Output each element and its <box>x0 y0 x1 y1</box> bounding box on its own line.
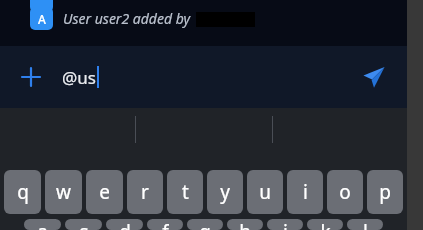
staticText: t <box>182 179 189 205</box>
button[interactable]: h <box>227 219 263 230</box>
staticText: @us <box>62 66 96 89</box>
staticText: p <box>379 179 391 205</box>
button[interactable]: Send <box>355 58 393 96</box>
button[interactable]: u <box>247 170 283 214</box>
button[interactable]: y <box>207 170 243 214</box>
button[interactable]: r <box>127 170 163 214</box>
button[interactable]: f <box>147 219 183 230</box>
button[interactable]: g <box>187 219 223 230</box>
button[interactable]: q <box>4 170 41 214</box>
staticText: y <box>220 179 230 205</box>
button[interactable]: w <box>45 170 82 214</box>
button[interactable]: @us <box>62 57 347 97</box>
button[interactable]: a <box>24 219 61 230</box>
button[interactable]: A <box>0 7 407 30</box>
staticText: k <box>320 219 331 230</box>
staticText: A <box>38 11 46 27</box>
button[interactable]: j <box>267 219 303 230</box>
staticText: w <box>56 179 71 205</box>
staticText: a <box>37 219 48 230</box>
staticText: s <box>79 219 89 230</box>
staticText: i <box>303 179 308 205</box>
staticText: o <box>339 179 351 205</box>
button[interactable]: Add attachment <box>14 60 48 94</box>
staticText: r <box>141 179 149 205</box>
staticText: l <box>363 219 368 230</box>
button[interactable]: p <box>367 170 403 214</box>
staticText: u <box>259 179 271 205</box>
staticText: f <box>162 219 169 230</box>
button[interactable]: t <box>167 170 203 214</box>
staticText: d <box>119 219 131 230</box>
button[interactable]: i <box>287 170 323 214</box>
button[interactable]: l <box>347 219 383 230</box>
button[interactable]: o <box>327 170 363 214</box>
button[interactable]: e <box>86 170 123 214</box>
staticText: h <box>239 219 251 230</box>
button[interactable]: d <box>106 219 143 230</box>
staticText: j <box>283 219 288 230</box>
staticText: q <box>17 179 29 205</box>
staticText: e <box>99 179 110 205</box>
staticText: User user2 added by <box>63 9 191 28</box>
staticText: g <box>199 219 211 230</box>
button[interactable]: k <box>307 219 343 230</box>
button[interactable]: s <box>65 219 102 230</box>
